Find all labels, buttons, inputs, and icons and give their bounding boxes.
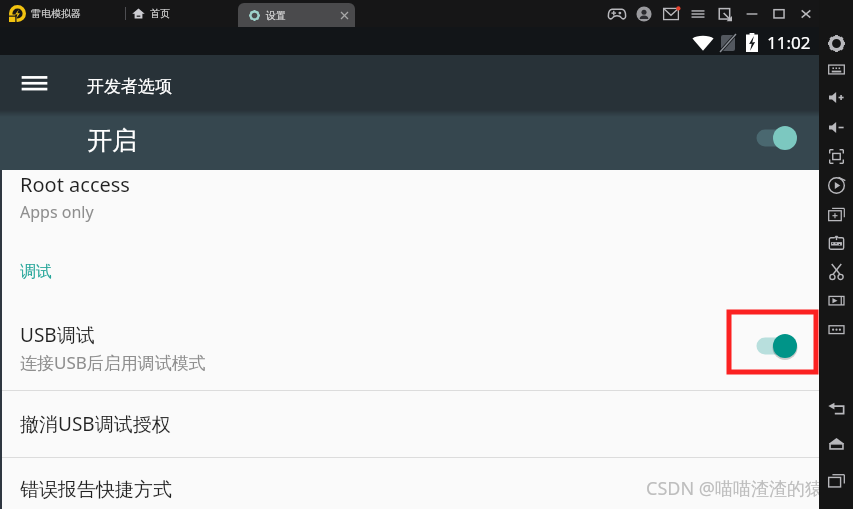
button[interactable]: Volume up	[819, 83, 853, 111]
button[interactable]: Screenshot	[819, 200, 853, 228]
button[interactable]: Minimize	[738, 0, 765, 27]
staticText: Root access	[20, 171, 130, 198]
button[interactable]: USB调试	[0, 305, 819, 390]
staticText: 错误报告快捷方式	[20, 478, 172, 502]
button[interactable]: Account	[630, 0, 657, 27]
staticText: 开发者选项	[87, 76, 172, 97]
button[interactable]: Home	[819, 429, 853, 457]
button[interactable]: Maximize	[765, 0, 792, 27]
staticText: 雷电模拟器	[31, 7, 81, 20]
staticText: 调试	[20, 262, 52, 282]
staticText: 设置	[266, 9, 286, 22]
button[interactable]: Toggle	[756, 125, 797, 151]
button[interactable]: 错误报告快捷方式	[0, 458, 819, 509]
button[interactable]: More	[819, 315, 853, 343]
button[interactable]: Toggle	[756, 333, 797, 359]
button[interactable]: Video	[819, 286, 853, 314]
button[interactable]: Fullscreen	[819, 142, 853, 170]
button[interactable]: 开启	[0, 110, 819, 170]
staticText: 撤消USB调试授权	[20, 411, 171, 437]
staticText: 首页	[150, 7, 170, 20]
button[interactable]: Install APK	[819, 229, 853, 257]
button[interactable]: Open navigation menu	[11, 60, 57, 106]
button[interactable]: Close tab	[336, 7, 352, 23]
button[interactable]: 撤消USB调试授权	[0, 391, 819, 457]
button[interactable]: Gamepad	[603, 0, 630, 27]
button[interactable]: Keyboard	[819, 55, 853, 83]
button[interactable]: Menu	[684, 0, 711, 27]
button[interactable]: Messages	[657, 0, 684, 27]
button[interactable]: Settings	[819, 29, 853, 57]
staticText: 连接USB后启用调试模式	[20, 351, 206, 374]
button[interactable]: 设置	[238, 3, 355, 27]
button[interactable]: 首页	[132, 0, 170, 27]
staticText: Apps only	[20, 201, 94, 223]
staticText: USB调试	[20, 322, 95, 348]
button[interactable]: Cut	[819, 257, 853, 285]
staticText: 11:02	[767, 31, 811, 54]
button[interactable]: Volume down	[819, 113, 853, 141]
button[interactable]: Back	[819, 395, 853, 423]
button[interactable]: Close	[792, 0, 819, 27]
staticText: 开启	[87, 125, 137, 156]
button[interactable]: Root access	[0, 170, 819, 240]
button[interactable]: Record	[819, 171, 853, 199]
button[interactable]: Recents	[819, 467, 853, 495]
button[interactable]: Resize	[711, 0, 738, 27]
staticText: CSDN @喵喵渣渣的猿	[646, 476, 823, 501]
